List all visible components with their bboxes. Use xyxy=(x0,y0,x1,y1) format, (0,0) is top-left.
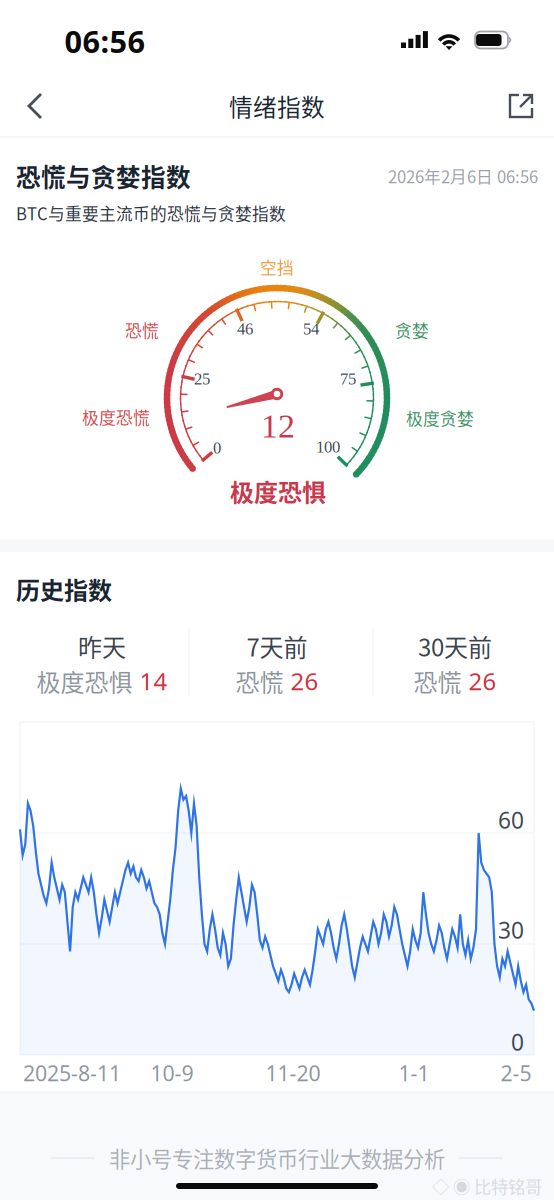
staticText: 25 xyxy=(194,370,210,388)
staticText: 06:56 xyxy=(64,21,145,61)
staticText: 11-20 xyxy=(265,1059,320,1087)
staticText: 情绪指数 xyxy=(229,89,325,123)
staticText: 极度贪婪 xyxy=(406,406,474,430)
staticText: 0 xyxy=(213,439,221,457)
staticText: 46 xyxy=(237,320,253,338)
staticText: 2026年2月6日 06:56 xyxy=(388,164,538,188)
staticText: 14 xyxy=(139,665,167,697)
staticText: 2-5 xyxy=(500,1059,531,1087)
button[interactable]: Share xyxy=(497,82,545,130)
staticText: 30 xyxy=(498,915,524,945)
button[interactable]: Back xyxy=(7,78,63,134)
staticText: 7天前 xyxy=(246,629,307,663)
staticText: 极度恐慌 xyxy=(82,405,150,429)
staticText: 空挡 xyxy=(260,255,294,279)
staticText: ◇ ◉ 比特铭哥 xyxy=(432,1173,542,1199)
staticText: 历史指数 xyxy=(16,572,112,606)
staticText: 恐慌 xyxy=(125,318,159,342)
staticText: 极度恐惧 xyxy=(230,474,326,508)
staticText: 54 xyxy=(303,320,319,338)
staticText: 恐慌 xyxy=(235,664,283,698)
staticText: 1-1 xyxy=(398,1059,429,1087)
staticText: 10-9 xyxy=(150,1059,193,1087)
staticText: 极度恐惧 xyxy=(36,664,132,698)
staticText: 75 xyxy=(340,370,356,388)
staticText: 恐慌与贪婪指数 xyxy=(16,158,191,194)
staticText: 30天前 xyxy=(418,629,492,663)
staticText: 60 xyxy=(498,805,524,835)
staticText: 昨天 xyxy=(78,629,126,663)
staticText: 0 xyxy=(511,1027,524,1057)
staticText: 100 xyxy=(316,438,340,456)
staticText: 贪婪 xyxy=(395,318,429,342)
staticText: 恐慌 xyxy=(413,664,461,698)
staticText: 2025-8-11 xyxy=(23,1059,121,1087)
staticText: BTC与重要主流币的恐慌与贪婪指数 xyxy=(16,201,286,225)
staticText: 26 xyxy=(290,665,318,697)
staticText: 非小号专注数字货币行业大数据分析 xyxy=(109,1143,445,1173)
staticText: 26 xyxy=(468,665,496,697)
staticText: 12 xyxy=(261,407,295,445)
